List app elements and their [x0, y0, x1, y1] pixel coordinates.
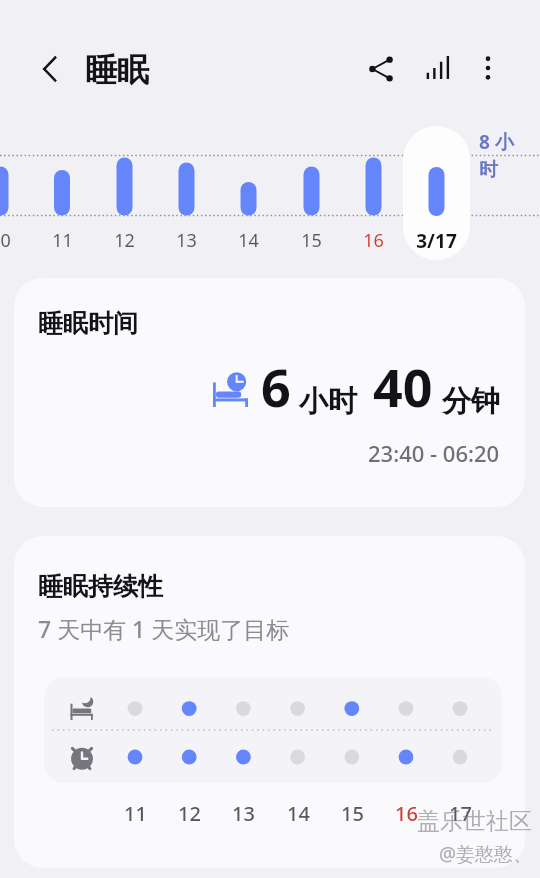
staticText: 13 — [176, 228, 197, 253]
button[interactable]: Statistics — [412, 42, 464, 94]
staticText: 14 — [287, 800, 310, 827]
button[interactable]: 睡眠时间 — [14, 278, 525, 507]
staticText: @姜憨憨、 — [438, 841, 532, 867]
staticText: 睡眠时间 — [38, 308, 138, 339]
button[interactable]: 15 — [280, 126, 342, 260]
staticText: 11 — [124, 800, 147, 827]
staticText: 8 小时 — [479, 129, 515, 182]
staticText: 11 — [52, 228, 73, 253]
button[interactable]: 12 — [93, 126, 155, 260]
button[interactable] — [403, 126, 470, 260]
staticText: 16 — [363, 228, 384, 253]
staticText: 23:40 - 06:20 — [368, 438, 500, 468]
staticText: 12 — [178, 800, 201, 827]
staticText: 40 — [373, 351, 433, 422]
staticText: 小时 — [299, 383, 357, 420]
button[interactable]: 16 — [342, 126, 404, 260]
staticText: 睡眠 — [85, 50, 149, 90]
staticText: 6 — [261, 351, 291, 422]
staticText: 分钟 — [442, 383, 500, 420]
staticText: 12 — [114, 228, 135, 253]
button[interactable]: 13 — [155, 126, 217, 260]
button[interactable]: More options — [462, 42, 514, 94]
staticText: 10 — [0, 228, 11, 253]
staticText: 15 — [301, 228, 322, 253]
button[interactable]: 10 — [0, 126, 31, 260]
staticText: 14 — [238, 228, 259, 253]
button[interactable]: 11 — [31, 126, 93, 260]
staticText: 16 — [395, 800, 418, 827]
staticText: 睡眠持续性 — [38, 571, 163, 602]
staticText: 3/17 — [416, 228, 457, 254]
button[interactable]: Back — [25, 44, 75, 94]
button[interactable]: Share — [355, 43, 407, 95]
staticText: 盖乐世社区 — [417, 807, 532, 836]
staticText: 15 — [341, 800, 364, 827]
staticText: 17 — [449, 800, 472, 827]
staticText: 7 天中有 1 天实现了目标 — [38, 613, 290, 644]
staticText: 13 — [232, 800, 255, 827]
button[interactable]: 14 — [217, 126, 279, 260]
button[interactable]: 睡眠持续性 — [14, 536, 525, 868]
